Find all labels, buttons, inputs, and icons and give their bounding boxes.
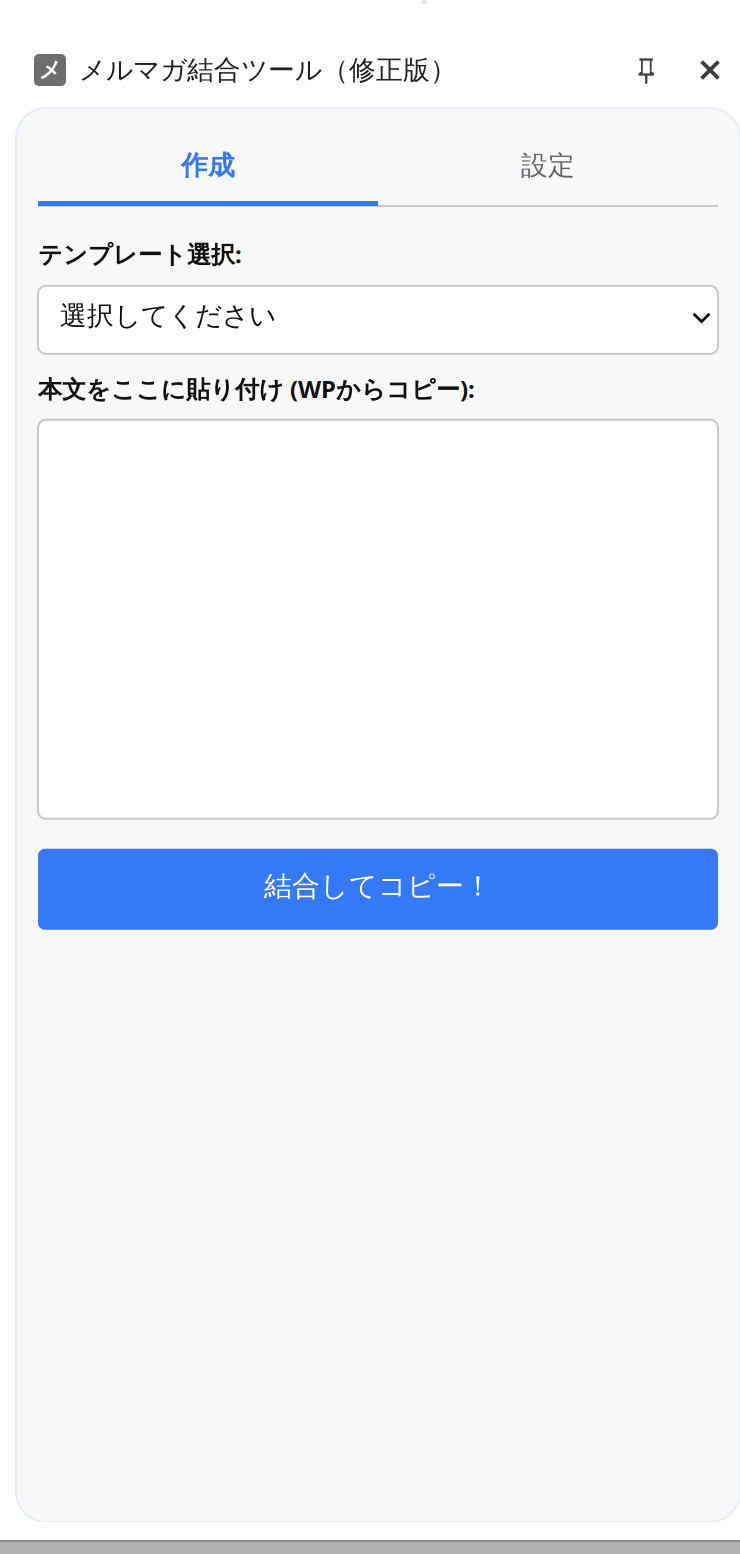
button[interactable]: 作成 [38, 126, 378, 201]
button[interactable]: 閉じる [690, 50, 730, 90]
staticText: 選択してください [60, 299, 276, 332]
staticText: 結合してコピー！ [264, 869, 492, 903]
button[interactable]: ピン留め [626, 50, 666, 90]
staticText: 作成 [181, 149, 235, 182]
button[interactable]: 設定 [378, 126, 718, 201]
staticText: メルマガ結合ツール（修正版） [79, 54, 457, 86]
button[interactable]: 選択してください [38, 286, 718, 354]
staticText: メ [38, 56, 61, 84]
staticText: テンプレート選択: [38, 238, 242, 270]
button[interactable]: 結合してコピー！ [38, 849, 718, 930]
staticText: 設定 [521, 149, 575, 182]
staticText: 本文をここに貼り付け (WPからコピー): [38, 373, 475, 405]
